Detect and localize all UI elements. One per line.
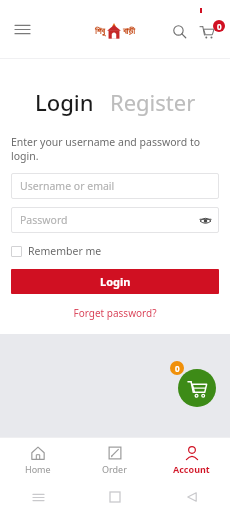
button[interactable]: Register [106, 85, 200, 119]
button[interactable]: Account [153, 438, 230, 482]
staticText: Enter your username and password to logi… [11, 135, 219, 163]
button[interactable]: Open cart [170, 361, 216, 407]
staticText: Remember me [28, 244, 102, 258]
staticText: Order [102, 463, 127, 475]
button[interactable]: Menu [8, 15, 36, 43]
staticText: Login [35, 87, 94, 117]
button[interactable]: Back [153, 482, 230, 512]
button[interactable]: Username or email [11, 173, 219, 199]
button[interactable]: Forget password? [0, 306, 230, 320]
button[interactable]: Login [31, 85, 98, 119]
staticText: Register [110, 87, 196, 117]
button[interactable]: Password [11, 207, 219, 233]
button[interactable]: Remember me [11, 244, 102, 258]
button[interactable]: Home [0, 438, 76, 482]
button[interactable]: Logo [95, 23, 135, 39]
staticText: 0 [175, 363, 180, 374]
button[interactable]: Recents [0, 482, 76, 512]
staticText: বাড়ী [123, 27, 135, 36]
button[interactable]: Order [76, 438, 153, 482]
staticText: Username or email [20, 179, 115, 193]
staticText: 0 [217, 21, 222, 32]
button[interactable]: Show password [197, 212, 213, 228]
button[interactable]: Login [11, 269, 219, 294]
button[interactable]: Search [166, 18, 192, 44]
button[interactable]: Cart [194, 16, 224, 46]
staticText: Login [100, 274, 131, 289]
staticText: শিবু [95, 27, 105, 36]
staticText: Account [173, 463, 210, 475]
button[interactable]: Home [76, 482, 153, 512]
staticText: Password [20, 213, 68, 227]
staticText: Home [25, 463, 51, 475]
